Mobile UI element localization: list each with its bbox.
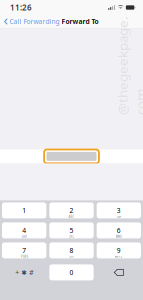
button[interactable]: + ✱ # — [2, 264, 46, 280]
staticText: 9 — [117, 246, 121, 255]
button[interactable]: 5 — [49, 222, 94, 238]
staticText: ABC — [68, 215, 74, 218]
staticText: @thegeekpage.com — [82, 48, 143, 83]
button[interactable]: 6 — [97, 222, 141, 238]
button[interactable]: Delete — [97, 264, 141, 280]
staticText: 11:26 — [10, 2, 32, 13]
button[interactable]: 2 — [49, 202, 94, 218]
staticText: DEF — [117, 215, 121, 218]
staticText: GHI — [22, 235, 27, 238]
button[interactable]: 9 — [97, 242, 141, 258]
button[interactable]: 7 — [2, 242, 46, 258]
staticText: 3 — [117, 206, 121, 215]
staticText: 2 — [69, 206, 73, 215]
staticText: 0 — [69, 268, 73, 277]
button[interactable]: 3 — [97, 202, 141, 218]
button[interactable]: 1 — [2, 202, 46, 218]
button[interactable]: 8 — [49, 242, 94, 258]
staticText: PQRS — [21, 255, 28, 258]
staticText: Call Forwarding — [9, 17, 59, 26]
staticText: 8 — [69, 246, 73, 255]
staticText: JKL — [69, 235, 73, 238]
staticText: + ✱ # — [15, 268, 33, 277]
staticText: 6 — [117, 226, 121, 235]
staticText: 1 — [22, 206, 26, 215]
button[interactable]: 4 — [2, 222, 46, 238]
staticText: Forward To — [61, 17, 98, 26]
staticText: WXYZ — [115, 255, 123, 258]
staticText: MNO — [116, 235, 122, 238]
button[interactable]: Call Forwarding — [0, 15, 61, 28]
staticText: 5 — [69, 226, 73, 235]
staticText: 4 — [22, 226, 26, 235]
staticText: TUV — [69, 255, 74, 258]
staticText: 7 — [22, 246, 26, 255]
button[interactable]: 0 — [49, 264, 94, 280]
